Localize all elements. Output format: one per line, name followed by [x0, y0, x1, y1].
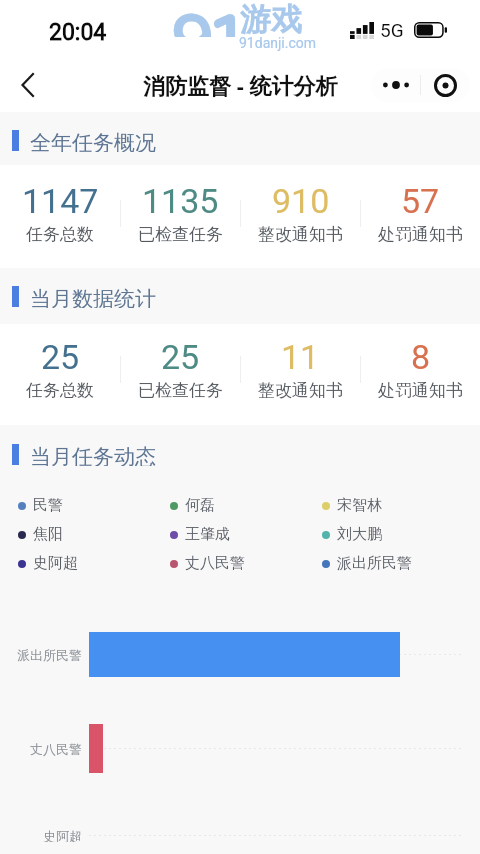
staticText: 8: [411, 337, 431, 377]
staticText: 游戏: [240, 0, 302, 39]
staticText: 91danji.com: [239, 35, 317, 51]
staticText: 当月任务动态: [30, 444, 156, 466]
button[interactable]: More: [371, 68, 420, 102]
staticText: 焦阳: [33, 525, 63, 544]
staticText: 丈八民警: [185, 554, 245, 573]
staticText: 刘大鹏: [337, 525, 382, 544]
button[interactable]: Close mini program: [421, 68, 470, 102]
staticText: 当月数据统计: [30, 286, 156, 308]
staticText: 消防监督 - 统计分析: [143, 70, 338, 100]
staticText: 派出所民警: [17, 647, 82, 663]
staticText: 全年任务概况: [30, 130, 156, 152]
staticText: 任务总数: [26, 380, 94, 401]
staticText: 91: [171, 0, 242, 37]
button[interactable]: Back: [6, 64, 48, 106]
staticText: 5G: [380, 19, 404, 41]
staticText: 任务总数: [26, 224, 94, 245]
staticText: 何磊: [185, 496, 215, 515]
staticText: 派出所民警: [337, 554, 412, 573]
staticText: 丈八民警: [30, 741, 82, 757]
staticText: 史阿超: [33, 554, 78, 573]
staticText: 25: [161, 337, 200, 377]
staticText: 1147: [22, 181, 99, 221]
staticText: 整改通知书: [258, 380, 343, 401]
staticText: 宋智林: [337, 496, 382, 515]
staticText: 处罚通知书: [378, 224, 463, 245]
staticText: 已检查任务: [138, 380, 223, 401]
staticText: 已检查任务: [138, 224, 223, 245]
staticText: 史阿超: [43, 828, 82, 842]
staticText: 1135: [142, 181, 219, 221]
staticText: 王肇成: [185, 525, 230, 544]
staticText: 处罚通知书: [378, 380, 463, 401]
staticText: 民警: [33, 496, 63, 515]
staticText: 25: [41, 337, 80, 377]
staticText: 910: [272, 181, 330, 221]
staticText: 57: [401, 181, 440, 221]
staticText: 20:04: [49, 19, 107, 46]
staticText: 整改通知书: [258, 224, 343, 245]
staticText: 11: [281, 337, 320, 377]
